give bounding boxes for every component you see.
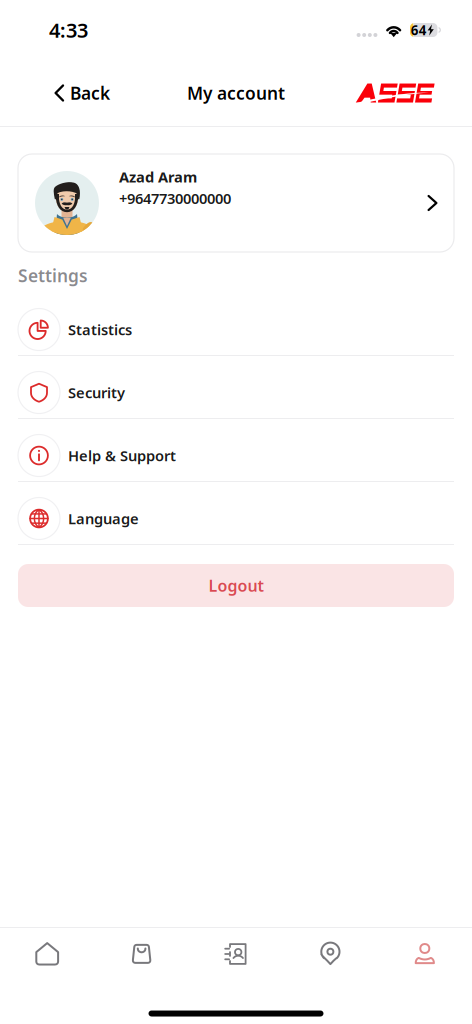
button[interactable]: Statistics bbox=[0, 293, 472, 356]
staticText: Back bbox=[70, 81, 110, 104]
button[interactable]: Shop bbox=[94, 934, 189, 974]
staticText: Language bbox=[68, 509, 139, 528]
button[interactable]: Help & Support bbox=[0, 419, 472, 482]
button[interactable]: Security bbox=[0, 356, 472, 419]
button[interactable]: Back bbox=[47, 72, 118, 113]
staticText: Statistics bbox=[68, 320, 132, 339]
staticText: Settings bbox=[18, 264, 88, 287]
staticText: My account bbox=[187, 81, 285, 104]
staticText: Logout bbox=[208, 575, 263, 596]
staticText: Azad Aram bbox=[119, 167, 197, 186]
button[interactable]: Branches bbox=[283, 934, 378, 974]
button[interactable]: Home bbox=[0, 934, 94, 974]
button[interactable]: ASSE bbox=[356, 75, 432, 110]
staticText: Help & Support bbox=[68, 446, 176, 465]
staticText: Security bbox=[68, 383, 125, 402]
staticText: +9647730000000 bbox=[119, 188, 231, 208]
button[interactable]: Contacts bbox=[189, 934, 283, 974]
button[interactable]: My account bbox=[378, 934, 472, 974]
staticText: 4:33 bbox=[49, 17, 88, 43]
button[interactable]: Azad Aram bbox=[18, 154, 454, 252]
staticText: 64 bbox=[411, 21, 427, 39]
button[interactable]: Logout bbox=[18, 564, 454, 607]
button[interactable]: Language bbox=[0, 482, 472, 545]
